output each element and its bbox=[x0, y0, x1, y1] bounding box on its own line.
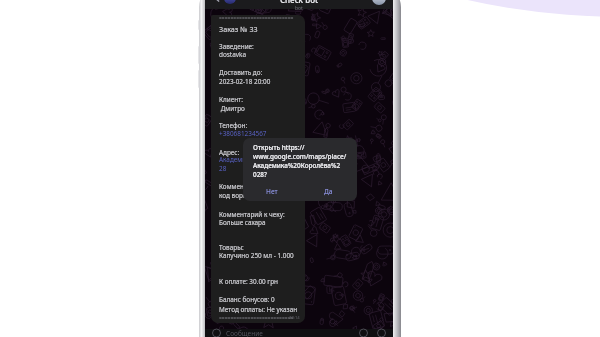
button[interactable]: Profile bbox=[372, 0, 386, 5]
button[interactable]: Да bbox=[300, 187, 357, 196]
staticText: код ворот 123 bbox=[219, 191, 263, 200]
button[interactable]: Back bbox=[211, 0, 224, 5]
staticText: Нет bbox=[266, 187, 278, 196]
staticText: Метод оплаты: Не указан bbox=[219, 305, 298, 314]
staticText: 2023-02-18 20:00 bbox=[219, 77, 271, 86]
staticText: Сообщение bbox=[226, 329, 263, 337]
staticText: Заказ № 33 bbox=[219, 24, 258, 34]
staticText: Комментарий: bbox=[219, 182, 264, 191]
staticText: Больше сахара bbox=[219, 218, 266, 227]
button[interactable]: Chat avatar bbox=[224, 0, 236, 4]
button[interactable]: Voice message bbox=[377, 329, 386, 337]
button[interactable]: ========================== bbox=[211, 15, 305, 323]
staticText: bot bbox=[295, 5, 303, 12]
button[interactable]: Emoji bbox=[212, 329, 221, 337]
staticText: Открыть https:// www.google.com/maps/pla… bbox=[253, 143, 347, 179]
staticText: ========================== bbox=[219, 315, 294, 322]
staticText: 20:14 bbox=[289, 315, 300, 321]
staticText: 28 bbox=[219, 164, 227, 173]
staticText: Товары: bbox=[219, 243, 244, 252]
staticText: ========================== bbox=[219, 15, 294, 22]
staticText: Клиент: bbox=[219, 95, 243, 104]
staticText: +380681234567 bbox=[219, 129, 267, 138]
button[interactable]: Нет bbox=[243, 187, 300, 196]
button[interactable]: Attach file bbox=[359, 329, 368, 337]
staticText: Доставить до: bbox=[219, 68, 263, 77]
staticText: Академика Королёва bbox=[219, 155, 285, 164]
staticText: Заведение: bbox=[219, 42, 254, 51]
staticText: Да bbox=[324, 187, 333, 196]
staticText: Баланс бонусов: 0 bbox=[219, 295, 275, 304]
staticText: dostavka bbox=[219, 50, 246, 59]
staticText: К оплате: 30.00 грн bbox=[219, 277, 278, 286]
staticText: Капучино 250 мл - 1.000 bbox=[219, 251, 294, 260]
staticText: Check bot bbox=[280, 0, 319, 5]
staticText: Дмитро bbox=[219, 104, 245, 113]
staticText: Комментарий к чеку: bbox=[219, 210, 285, 219]
staticText: Адрес: bbox=[219, 148, 240, 157]
staticText: Телефон: bbox=[219, 121, 248, 130]
